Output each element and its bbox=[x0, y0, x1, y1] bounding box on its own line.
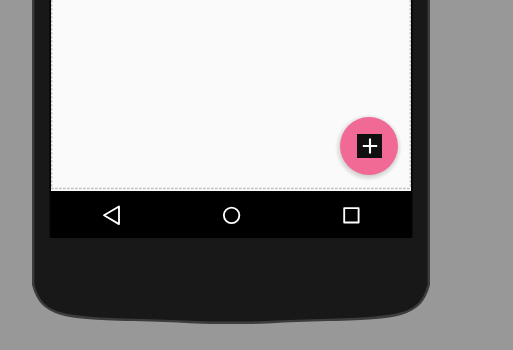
button[interactable]: Add bbox=[340, 117, 398, 175]
button[interactable]: Back bbox=[51, 191, 171, 238]
button[interactable]: Home bbox=[171, 191, 291, 238]
button[interactable]: Recent apps bbox=[291, 191, 411, 238]
